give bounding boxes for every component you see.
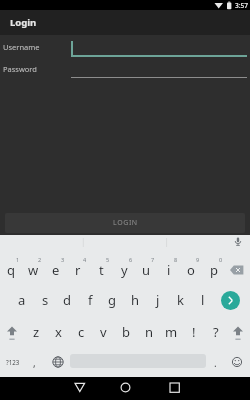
- staticText: ,: [33, 356, 36, 370]
- staticText: 8: [174, 256, 178, 263]
- staticText: o: [187, 261, 195, 279]
- staticText: .: [214, 356, 217, 370]
- staticText: LOGIN: [113, 218, 138, 228]
- staticText: b: [122, 323, 130, 341]
- staticText: h: [131, 291, 140, 309]
- staticText: a: [18, 291, 26, 309]
- staticText: w: [28, 261, 39, 279]
- button[interactable]: [221, 291, 240, 310]
- button[interactable]: [84, 377, 167, 400]
- button[interactable]: Login: [0, 10, 250, 35]
- staticText: 3:57: [235, 1, 248, 10]
- staticText: 3: [61, 256, 65, 263]
- staticText: z: [33, 323, 40, 341]
- staticText: y: [121, 261, 128, 279]
- staticText: r: [75, 261, 81, 279]
- staticText: m: [165, 323, 178, 341]
- staticText: p: [210, 261, 218, 279]
- staticText: v: [100, 323, 107, 341]
- staticText: Login: [10, 16, 37, 29]
- staticText: n: [145, 323, 154, 341]
- staticText: k: [177, 291, 184, 309]
- staticText: 0: [219, 256, 223, 263]
- staticText: 4: [83, 256, 87, 263]
- staticText: 6: [129, 256, 133, 263]
- staticText: g: [108, 291, 116, 309]
- staticText: x: [55, 323, 62, 341]
- staticText: l: [201, 291, 205, 309]
- button[interactable]: LOGIN: [5, 213, 245, 233]
- staticText: f: [88, 291, 93, 309]
- staticText: q: [7, 261, 15, 279]
- button[interactable]: [0, 377, 84, 400]
- staticText: 1: [16, 256, 20, 263]
- staticText: i: [167, 261, 171, 279]
- staticText: ?: [213, 323, 219, 341]
- staticText: d: [63, 291, 71, 309]
- staticText: e: [52, 261, 60, 279]
- staticText: 7: [151, 256, 155, 263]
- button[interactable]: [167, 377, 250, 400]
- staticText: 9: [196, 256, 200, 263]
- staticText: 5: [106, 256, 110, 263]
- staticText: c: [78, 323, 85, 341]
- staticText: j: [156, 291, 160, 309]
- staticText: ?123: [6, 358, 20, 366]
- staticText: s: [42, 291, 49, 309]
- staticText: Username: [3, 42, 40, 52]
- staticText: u: [142, 261, 151, 279]
- staticText: !: [192, 323, 196, 341]
- staticText: t: [99, 261, 104, 279]
- staticText: Password: [3, 64, 37, 74]
- staticText: 2: [38, 256, 42, 263]
